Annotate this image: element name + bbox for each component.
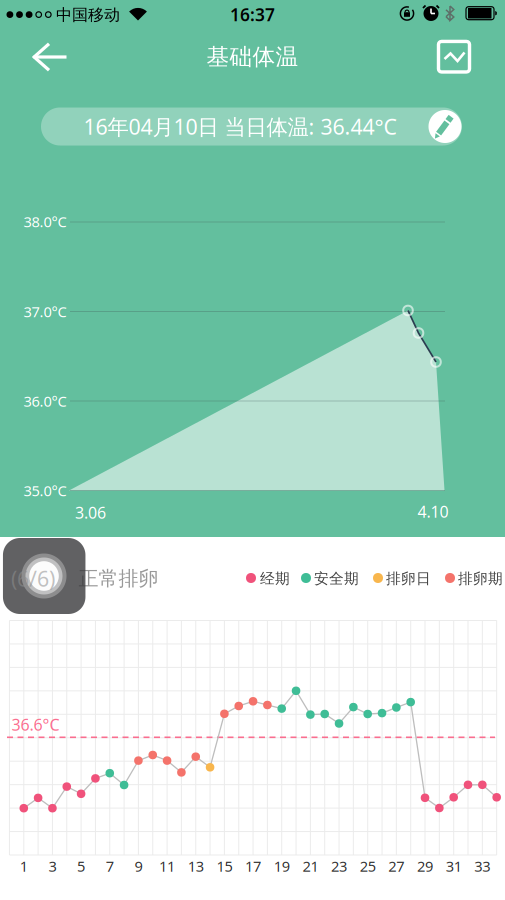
staticText: 排卵日 [386,569,431,587]
staticText: 13 [188,856,204,876]
staticText: 16年04月10日 当日体温: 36.44°C [83,112,396,141]
staticText: 25 [360,856,376,876]
staticText: (6/6) [11,564,55,593]
staticText: 16:37 [230,3,275,26]
staticText: 3 [48,856,56,876]
staticText: 38.0°C [23,212,66,231]
staticText: 5 [77,856,85,876]
staticText: 3.06 [75,502,106,523]
staticText: 1 [20,856,28,876]
staticText: 排卵期 [458,569,503,587]
staticText: 37.0°C [23,302,66,321]
staticText: 正常排卵 [78,566,158,591]
staticText: 36.0°C [23,391,66,411]
staticText: 31 [446,856,462,876]
staticText: 经期 [260,569,290,587]
staticText: 9 [134,856,142,876]
staticText: 17 [245,856,261,876]
staticText: 29 [417,856,433,876]
staticText: 19 [274,856,290,876]
staticText: 11 [159,856,175,876]
staticText: 4.10 [417,501,448,522]
staticText: 基础体温 [206,43,298,71]
staticText: 中国移动 [56,5,120,25]
staticText: 36.6°C [11,714,59,735]
staticText: 27 [388,856,404,876]
staticText: 安全期 [314,569,359,587]
staticText: 15 [216,856,232,876]
staticText: 7 [106,856,114,876]
staticText: 23 [331,856,347,876]
staticText: 21 [302,856,318,876]
staticText: 33 [474,856,490,876]
staticText: 35.0°C [23,481,66,500]
